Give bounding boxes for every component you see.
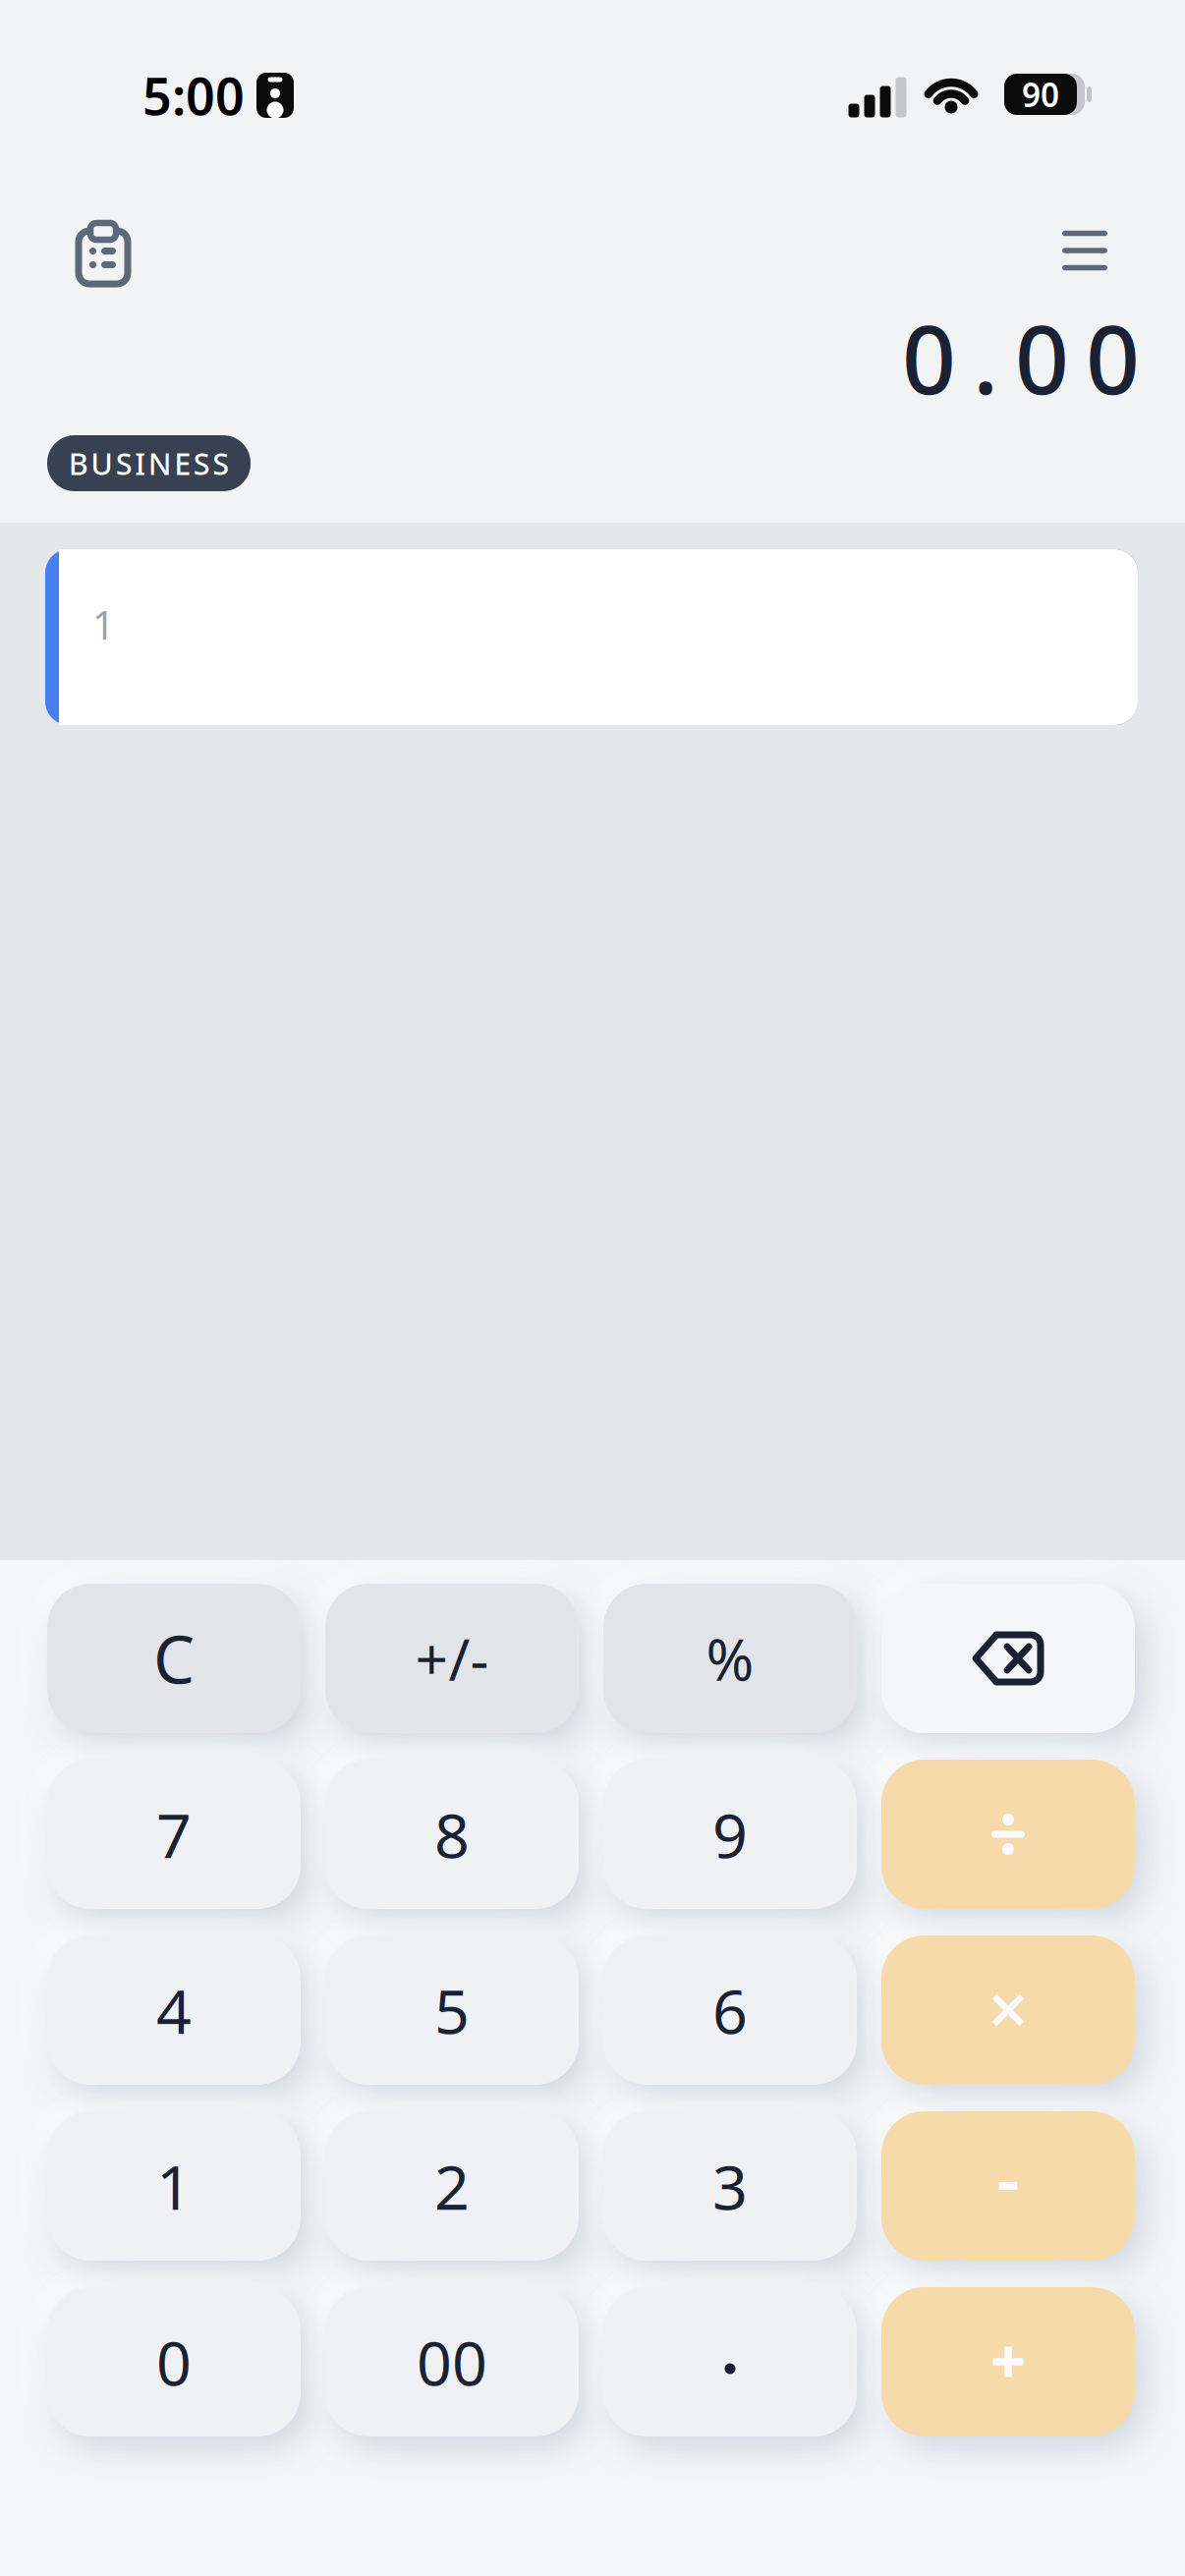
staticText: 8	[434, 1793, 470, 1875]
staticText: 5:00	[142, 61, 245, 129]
button[interactable]: +/-	[325, 1584, 579, 1733]
button[interactable]: 9	[603, 1760, 857, 1909]
button[interactable]: Divide	[881, 1760, 1135, 1909]
staticText: 0	[156, 2321, 192, 2403]
staticText: 7	[156, 1793, 192, 1875]
staticText: %	[706, 1620, 754, 1697]
button[interactable]: Subtract	[881, 2111, 1135, 2261]
button[interactable]: 7	[47, 1760, 301, 1909]
button[interactable]: Decimal point	[603, 2287, 857, 2436]
staticText: 2	[434, 2145, 470, 2227]
button[interactable]: History	[69, 210, 138, 289]
staticText: 1	[156, 2145, 192, 2227]
button[interactable]: 8	[325, 1760, 579, 1909]
staticText: +/-	[415, 1620, 489, 1697]
button[interactable]: 2	[325, 2111, 579, 2261]
staticText: 1	[92, 598, 115, 650]
button[interactable]: 3	[603, 2111, 857, 2261]
staticText: 0.00	[902, 295, 1140, 420]
staticText: 6	[712, 1969, 748, 2051]
button[interactable]: 00	[325, 2287, 579, 2436]
staticText: 3	[712, 2145, 748, 2227]
button[interactable]: BUSINESS	[47, 435, 251, 491]
staticText: BUSINESS	[69, 443, 229, 483]
button[interactable]: C	[47, 1584, 301, 1733]
button[interactable]: Multiply	[881, 1935, 1135, 2085]
button[interactable]: 6	[603, 1935, 857, 2085]
button[interactable]: 1	[47, 2111, 301, 2261]
staticText: 90	[1022, 73, 1059, 116]
button[interactable]: Menu	[1050, 216, 1119, 285]
button[interactable]: Delete	[881, 1584, 1135, 1733]
button[interactable]: 5	[325, 1935, 579, 2085]
staticText: 4	[156, 1969, 192, 2051]
button[interactable]: 4	[47, 1935, 301, 2085]
staticText: 5	[434, 1969, 470, 2051]
staticText: C	[153, 1615, 195, 1702]
staticText: 00	[417, 2321, 487, 2403]
button[interactable]: Add	[881, 2287, 1135, 2436]
staticText: 9	[712, 1793, 748, 1875]
button[interactable]: Expression input	[45, 549, 1138, 725]
button[interactable]: 0	[47, 2287, 301, 2436]
button[interactable]: %	[603, 1584, 857, 1733]
